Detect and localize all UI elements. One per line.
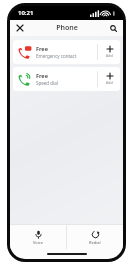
staticText: Speed dial [36,80,58,86]
staticText: 10:21 [18,9,34,17]
button[interactable]: Voice [10,225,66,249]
button[interactable]: Add [98,40,120,64]
button[interactable]: Close [13,21,27,35]
staticText: Add [106,80,113,85]
staticText: Free [36,72,48,79]
button[interactable]: Redial [67,225,123,249]
button[interactable]: Free [13,40,120,64]
button[interactable]: Free [13,67,120,91]
button[interactable]: Search [106,21,120,35]
button[interactable]: Add [98,67,120,91]
staticText: Emergency contact [36,53,77,59]
staticText: Redial [89,240,101,245]
staticText: Voice [33,240,43,245]
staticText: Free [36,45,48,52]
staticText: Add [106,53,113,58]
staticText: Phone [56,23,78,33]
